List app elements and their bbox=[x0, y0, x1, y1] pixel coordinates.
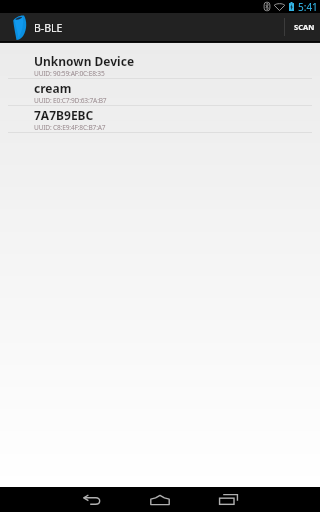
button[interactable]: Unknown Device bbox=[0, 52, 320, 78]
button[interactable]: B-BLE bbox=[0, 13, 73, 41]
button[interactable]: Home bbox=[146, 487, 173, 512]
button[interactable]: 7A7B9EBC bbox=[0, 106, 320, 132]
staticText: SCAN bbox=[294, 22, 315, 32]
staticText: cream bbox=[34, 80, 72, 96]
staticText: Unknown Device bbox=[34, 53, 135, 69]
staticText: 5:41 bbox=[298, 0, 318, 13]
staticText: UUID: E0:C7:9D:63:7A:B7 bbox=[34, 96, 107, 105]
staticText: 7A7B9EBC bbox=[34, 107, 94, 123]
button[interactable]: Back bbox=[78, 487, 105, 512]
button[interactable]: Recent apps bbox=[215, 487, 242, 512]
staticText: B-BLE bbox=[34, 21, 63, 35]
staticText: UUID: 90:59:AF:0C:E8:35 bbox=[34, 69, 105, 78]
button[interactable]: cream bbox=[0, 79, 320, 105]
button[interactable]: SCAN bbox=[285, 13, 320, 41]
staticText: UUID: C8:E9:4F:8C:B7:A7 bbox=[34, 123, 106, 132]
